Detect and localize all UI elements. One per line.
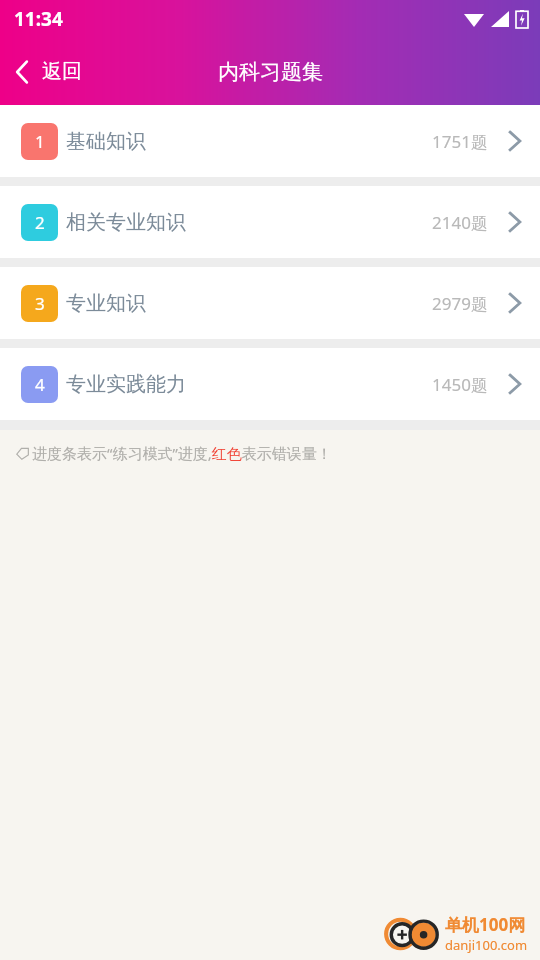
staticText: 2140题	[432, 211, 488, 234]
button[interactable]: 3	[0, 267, 540, 339]
staticText: 专业实践能力	[66, 372, 186, 397]
staticText: 单机100网	[445, 913, 526, 936]
staticText: 3	[35, 292, 45, 315]
staticText: 基础知识	[66, 129, 146, 154]
staticText: danji100.com	[445, 936, 528, 954]
staticText: 内科习题集	[218, 59, 323, 85]
staticText: 相关专业知识	[66, 210, 186, 235]
staticText: 专业知识	[66, 291, 146, 316]
other: Logo	[383, 917, 441, 951]
staticText: 进度条表示“练习模式”进度,红色表示错误量！	[32, 443, 332, 463]
staticText: 返回	[42, 59, 82, 84]
staticText: 1	[35, 130, 45, 153]
staticText: 11:34	[14, 6, 63, 32]
button[interactable]: 4	[0, 348, 540, 420]
button[interactable]: 1	[0, 105, 540, 177]
staticText: 4	[35, 373, 45, 396]
staticText: 2	[35, 211, 45, 234]
other: Back	[14, 59, 30, 85]
staticText: 1450题	[432, 373, 488, 396]
staticText: 2979题	[432, 292, 488, 315]
button[interactable]: Back	[0, 38, 94, 105]
staticText: 1751题	[432, 130, 488, 153]
button[interactable]: 2	[0, 186, 540, 258]
